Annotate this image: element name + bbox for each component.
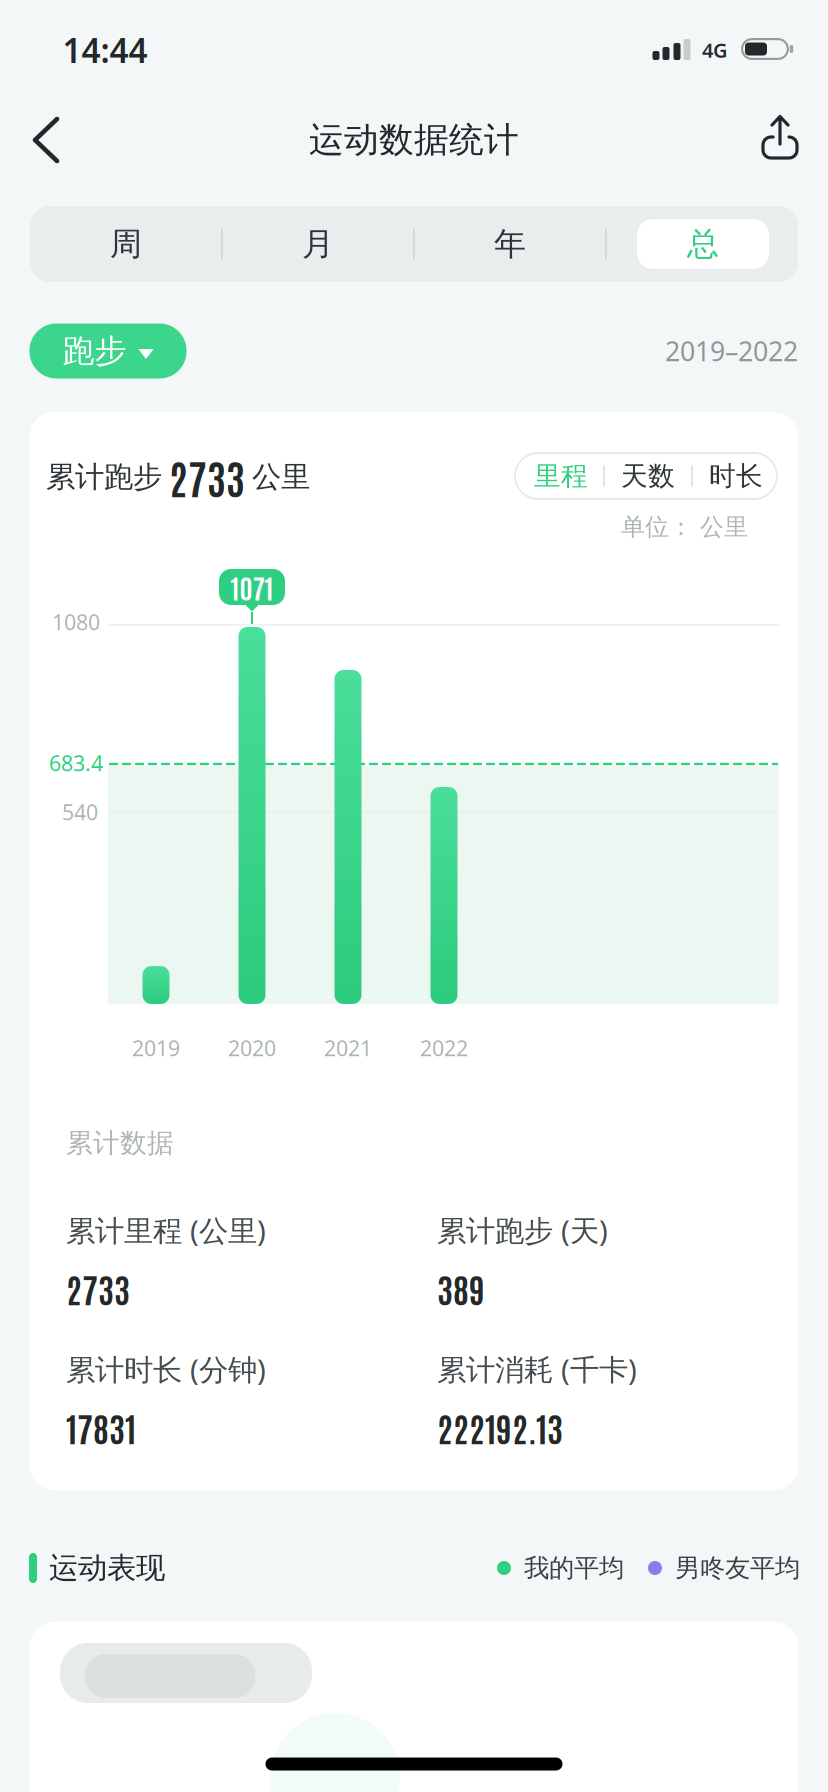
staticText: 222192.13 [437, 1405, 563, 1449]
staticText: 公里 [252, 459, 310, 495]
staticText: 运动表现 [49, 1550, 165, 1586]
staticText: 2022 [420, 1034, 468, 1062]
staticText: 2021 [324, 1034, 372, 1062]
staticText: 2020 [228, 1034, 276, 1062]
staticText: 运动数据统计 [309, 119, 519, 161]
staticText: 月 [302, 224, 334, 264]
button[interactable]: 月 [228, 209, 408, 279]
button[interactable]: 总 [637, 219, 769, 269]
staticText: 年 [494, 224, 526, 264]
staticText: 单位： 公里 [621, 512, 748, 542]
staticText: 2733 [169, 451, 245, 503]
staticText: 1080 [52, 608, 100, 636]
staticText: 2019 [132, 1034, 180, 1062]
staticText: 跑步 [62, 331, 126, 371]
button[interactable]: Back [21, 105, 71, 175]
staticText: 累计时长 (分钟) [66, 1349, 266, 1388]
staticText: 累计里程 (公里) [66, 1210, 266, 1249]
staticText: 17831 [66, 1405, 136, 1449]
staticText: 时长 [709, 460, 763, 492]
staticText: 540 [62, 798, 98, 826]
button[interactable]: 里程 [514, 452, 778, 500]
staticText: 里程 [534, 460, 588, 492]
staticText: 389 [437, 1266, 485, 1310]
button[interactable]: 里程 [519, 453, 603, 499]
staticText: 1071 [230, 570, 273, 604]
button[interactable]: 时长 [694, 453, 778, 499]
staticText: 我的平均 [524, 1552, 624, 1583]
staticText: 2733 [66, 1266, 130, 1310]
button[interactable]: 天数 [606, 453, 690, 499]
staticText: 累计跑步 [46, 459, 162, 495]
button[interactable]: 年 [420, 209, 600, 279]
staticText: 4G [702, 37, 728, 63]
staticText: 总 [687, 224, 719, 264]
staticText: 男咚友平均 [675, 1552, 800, 1583]
button[interactable]: 周 [36, 209, 216, 279]
staticText: 累计数据 [66, 1127, 174, 1159]
staticText: 14:44 [62, 28, 147, 72]
staticText: 周 [110, 224, 142, 264]
button[interactable]: Share [753, 114, 807, 168]
staticText: 天数 [621, 460, 675, 492]
staticText: 累计跑步 (天) [437, 1210, 608, 1249]
staticText: 累计消耗 (千卡) [437, 1349, 637, 1388]
button[interactable]: 选择运动类型 [29, 323, 186, 378]
staticText: 683.4 [49, 749, 103, 777]
staticText: 2019–2022 [665, 333, 798, 369]
